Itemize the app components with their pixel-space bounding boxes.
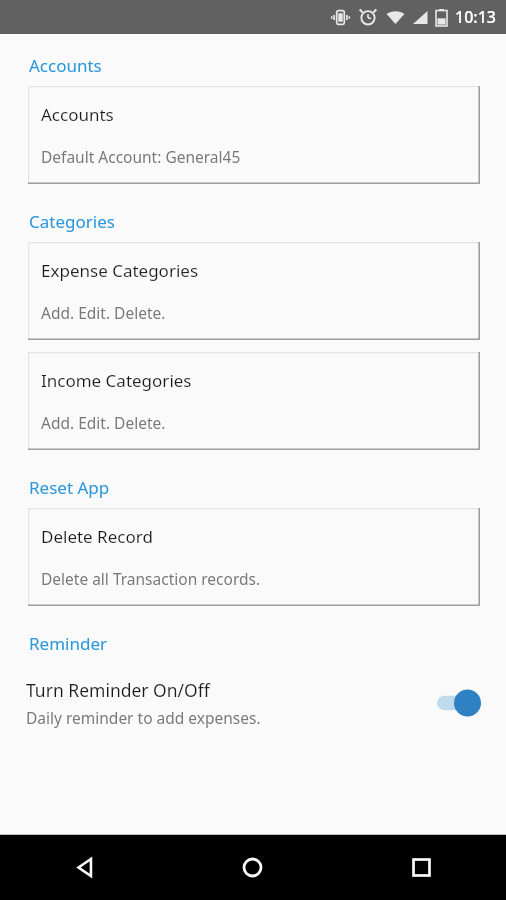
button[interactable]: Accounts bbox=[28, 86, 480, 184]
button[interactable]: Turn Reminder On/Off bbox=[0, 664, 506, 742]
staticText: Turn Reminder On/Off bbox=[26, 678, 210, 702]
staticText: Categories bbox=[29, 210, 506, 233]
button[interactable]: Home bbox=[168, 835, 337, 900]
staticText: Add. Edit. Delete. bbox=[41, 412, 166, 433]
button[interactable]: Back bbox=[0, 835, 168, 900]
button[interactable]: Expense Categories bbox=[28, 242, 480, 340]
button[interactable]: Recent apps bbox=[337, 835, 506, 900]
staticText: Reminder bbox=[29, 632, 506, 655]
button[interactable]: Delete Record bbox=[28, 508, 480, 606]
button[interactable]: Income Categories bbox=[28, 352, 480, 450]
staticText: Expense Categories bbox=[41, 259, 199, 282]
staticText: Reset App bbox=[29, 476, 506, 499]
staticText: Income Categories bbox=[41, 369, 192, 392]
button[interactable]: Turn Reminder On/Off bbox=[436, 688, 482, 718]
staticText: Daily reminder to add expenses. bbox=[26, 707, 261, 728]
staticText: Default Account: General45 bbox=[41, 146, 241, 167]
staticText: Delete Record bbox=[41, 525, 153, 548]
staticText: Add. Edit. Delete. bbox=[41, 302, 166, 323]
staticText: Accounts bbox=[41, 103, 114, 126]
staticText: Delete all Transaction records. bbox=[41, 568, 261, 589]
staticText: Accounts bbox=[29, 54, 506, 77]
staticText: 10:13 bbox=[455, 6, 496, 28]
